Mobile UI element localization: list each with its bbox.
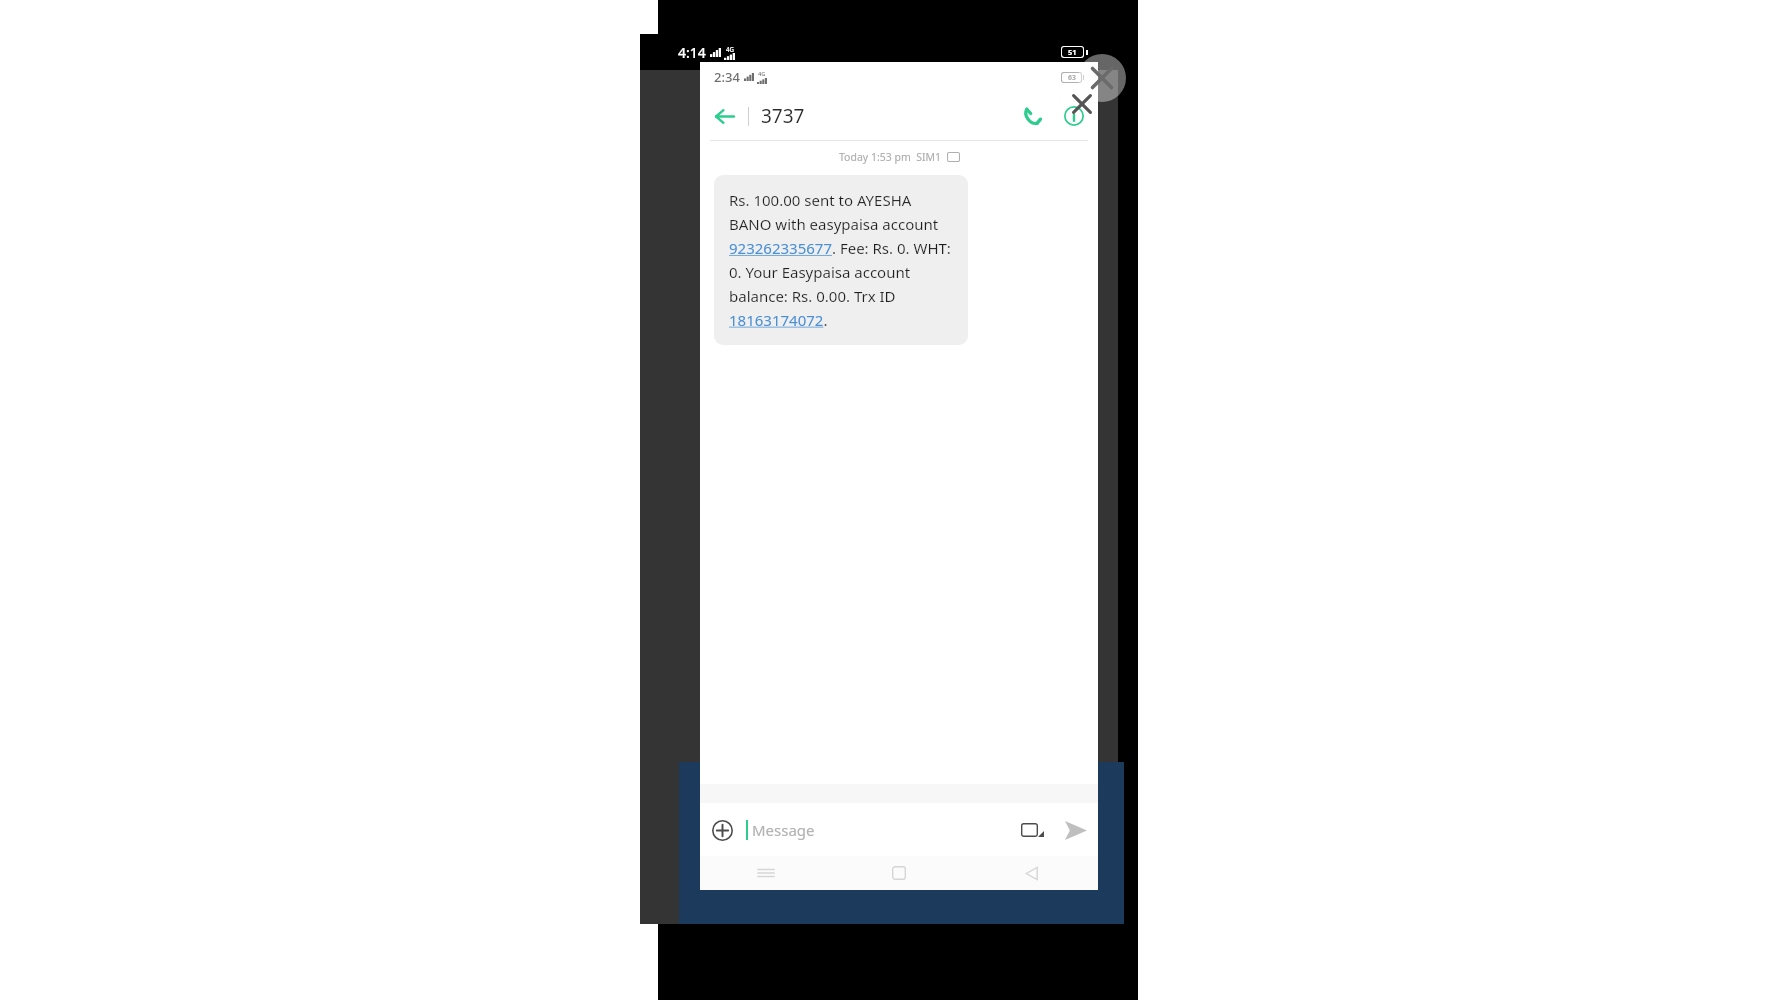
button[interactable]: Call: [1010, 94, 1054, 138]
button[interactable]: Back: [700, 92, 748, 140]
button[interactable]: Select SIM: [1013, 815, 1052, 845]
button[interactable]: Recents: [700, 863, 832, 883]
button[interactable]: Close screenshot: [1062, 84, 1102, 124]
button[interactable]: Add attachment: [700, 808, 744, 852]
button[interactable]: Back: [965, 866, 1098, 881]
staticText: 4G: [758, 70, 766, 78]
button[interactable]: Close screenshot: [1078, 54, 1126, 102]
staticText: Rs. 100.00 sent to AYESHA BANO with easy…: [729, 190, 953, 330]
button[interactable]: Rs. 100.00 sent to AYESHA BANO with easy…: [714, 175, 968, 345]
button[interactable]: Recents: [679, 804, 828, 830]
staticText: 51: [1068, 47, 1077, 57]
button[interactable]: Back: [976, 808, 1124, 827]
button[interactable]: Home: [832, 866, 965, 880]
staticText: 4G: [726, 45, 734, 53]
staticText: Today 1:53 pm SIM1: [839, 150, 942, 164]
staticText: 4:14: [678, 43, 706, 62]
staticText: 63: [1068, 73, 1076, 82]
staticText: Message: [752, 820, 815, 840]
staticText: 3737: [761, 103, 1010, 129]
button[interactable]: Message: [752, 820, 1013, 840]
button[interactable]: Send: [1054, 808, 1098, 852]
staticText: 2:34: [714, 68, 740, 86]
button[interactable]: Conversation details: [1054, 94, 1094, 138]
